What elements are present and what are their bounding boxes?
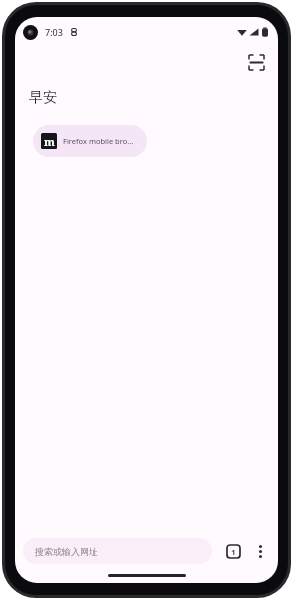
- button[interactable]: More options: [248, 539, 272, 563]
- staticText: m: [44, 134, 55, 149]
- staticText: 早安: [29, 89, 57, 107]
- staticText: Firefox mobile bro...: [63, 136, 134, 146]
- staticText: 1: [231, 547, 236, 557]
- staticText: 搜索或输入网址: [35, 546, 98, 557]
- button[interactable]: m: [33, 125, 147, 157]
- button[interactable]: Tabs, 1 open: [220, 538, 246, 564]
- button[interactable]: 搜索或输入网址: [23, 538, 212, 564]
- staticText: 7:03: [45, 26, 63, 38]
- button[interactable]: Scan QR code: [242, 48, 270, 76]
